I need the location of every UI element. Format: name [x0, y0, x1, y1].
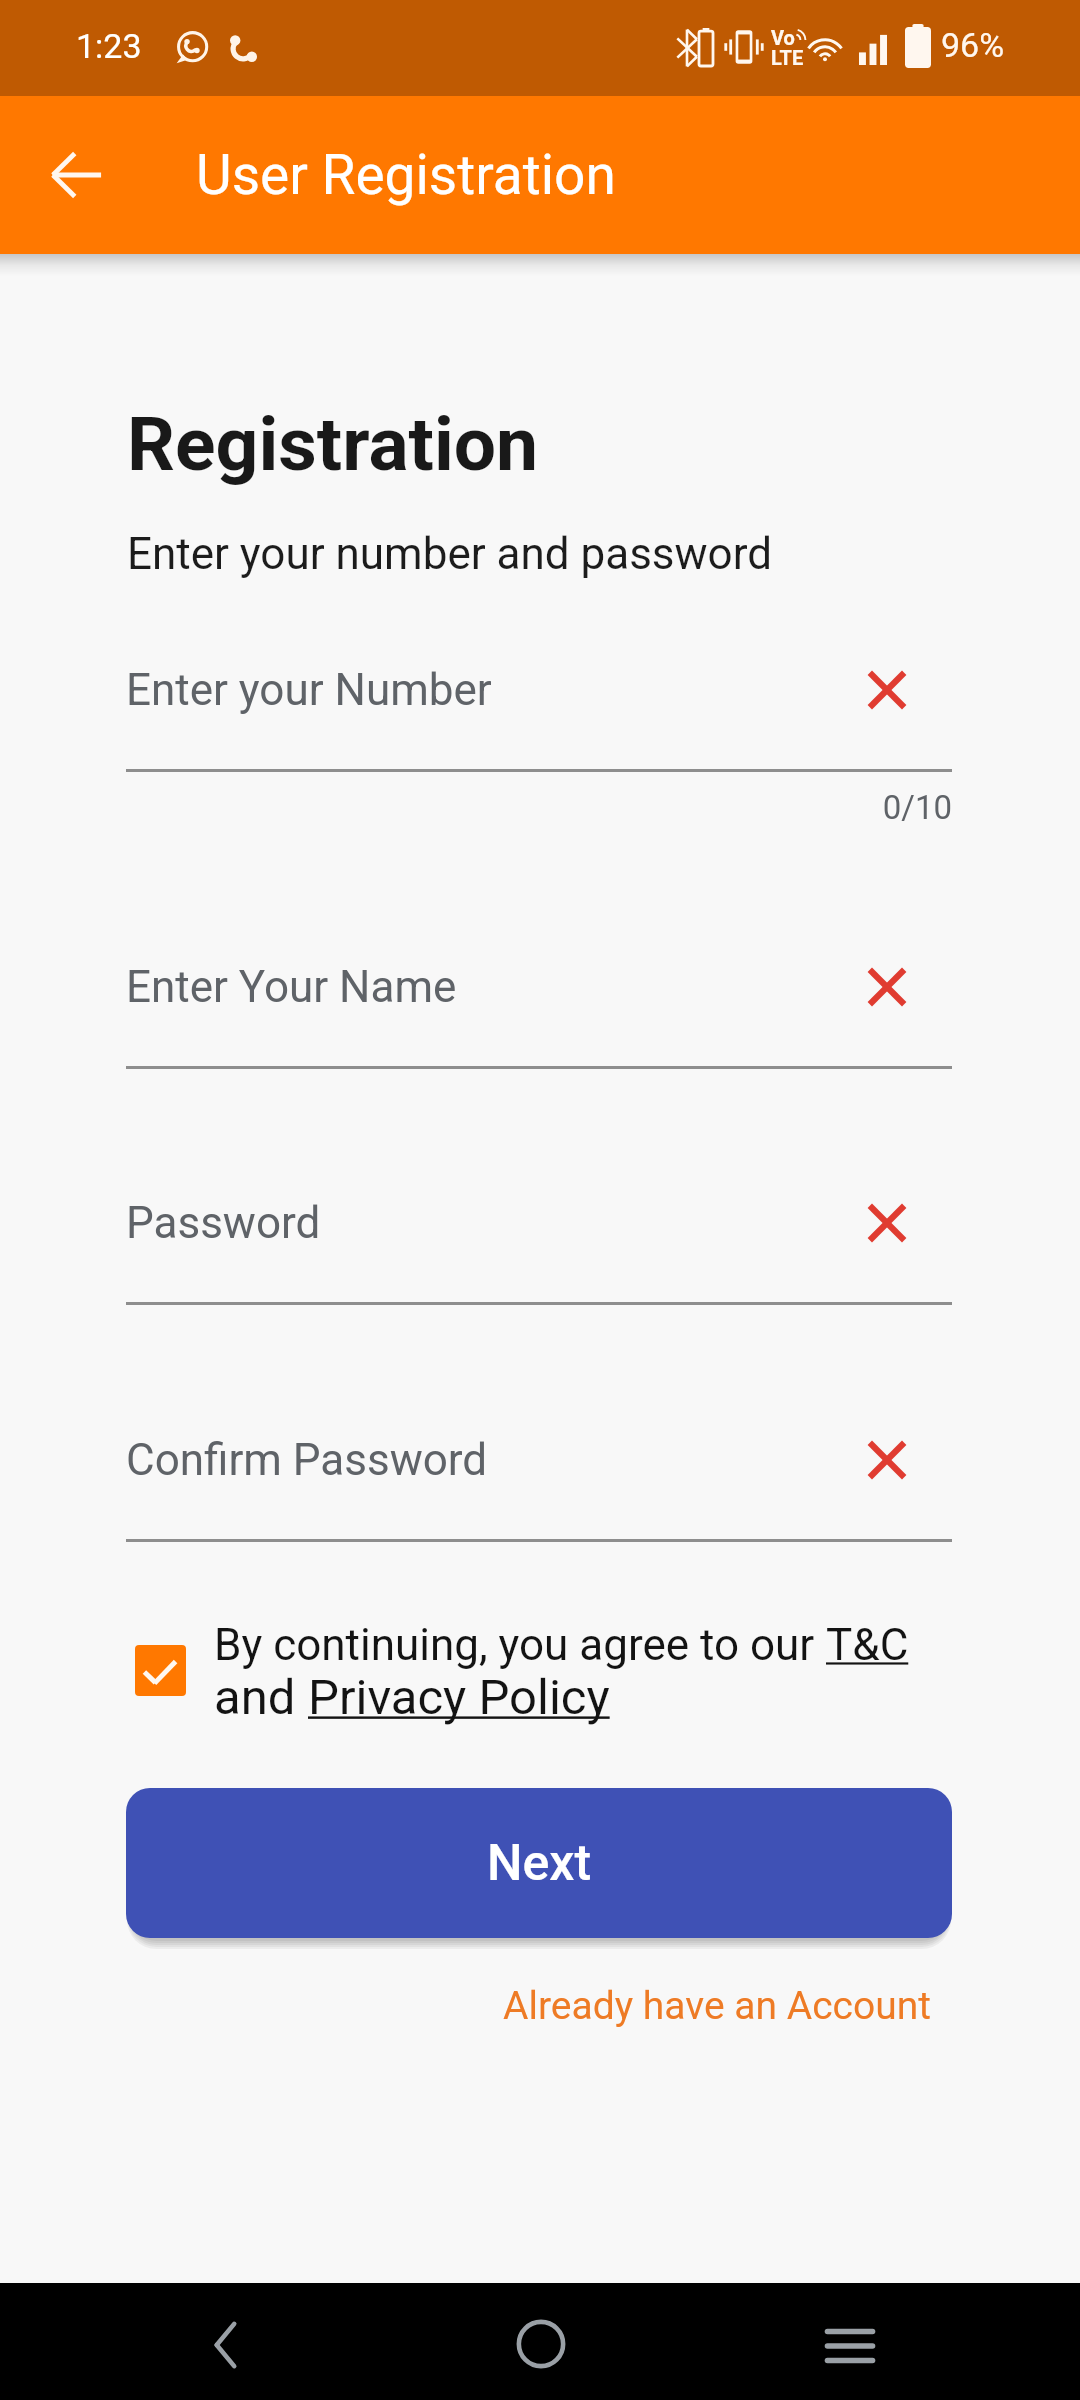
staticText: Vo	[771, 26, 795, 49]
button[interactable]: Clear Confirm Password	[849, 1422, 925, 1498]
button[interactable]: Enter Your Name	[126, 957, 952, 1069]
staticText: Enter Your Name	[126, 961, 457, 1013]
staticText: Next	[487, 1834, 592, 1893]
button[interactable]: Confirm Password	[126, 1430, 952, 1542]
staticText: 1:23	[76, 26, 142, 66]
button[interactable]: Back	[188, 2308, 262, 2382]
button[interactable]: Clear Enter your Number	[849, 652, 925, 728]
button[interactable]: Recent apps	[813, 2309, 887, 2383]
staticText: User Registration	[196, 143, 616, 207]
staticText: LTE	[771, 46, 804, 69]
button[interactable]: Back	[34, 132, 120, 218]
staticText: Privacy Policy	[308, 1669, 610, 1726]
staticText: T&C	[826, 1619, 909, 1671]
button[interactable]: Clear Enter Your Name	[849, 949, 925, 1025]
button[interactable]: Next	[126, 1788, 952, 1938]
button[interactable]: Already have an Account	[0, 1983, 1080, 2029]
staticText: Password	[126, 1197, 321, 1249]
staticText: and	[214, 1669, 308, 1726]
staticText: 96%	[941, 25, 1005, 65]
staticText: 0/10	[126, 788, 952, 827]
button[interactable]: Password	[126, 1193, 952, 1305]
button[interactable]: Home	[504, 2307, 578, 2381]
staticText: Registration	[127, 400, 539, 488]
staticText: Enter your Number	[126, 664, 492, 716]
button[interactable]: Enter your Number	[126, 660, 952, 772]
staticText: Confirm Password	[126, 1434, 488, 1486]
staticText: By continuing, you agree to our	[214, 1619, 826, 1671]
button[interactable]: Clear Password	[849, 1185, 925, 1261]
button[interactable]: By continuing, you agree to our	[135, 1628, 980, 1737]
staticText: Enter your number and password	[127, 528, 773, 580]
